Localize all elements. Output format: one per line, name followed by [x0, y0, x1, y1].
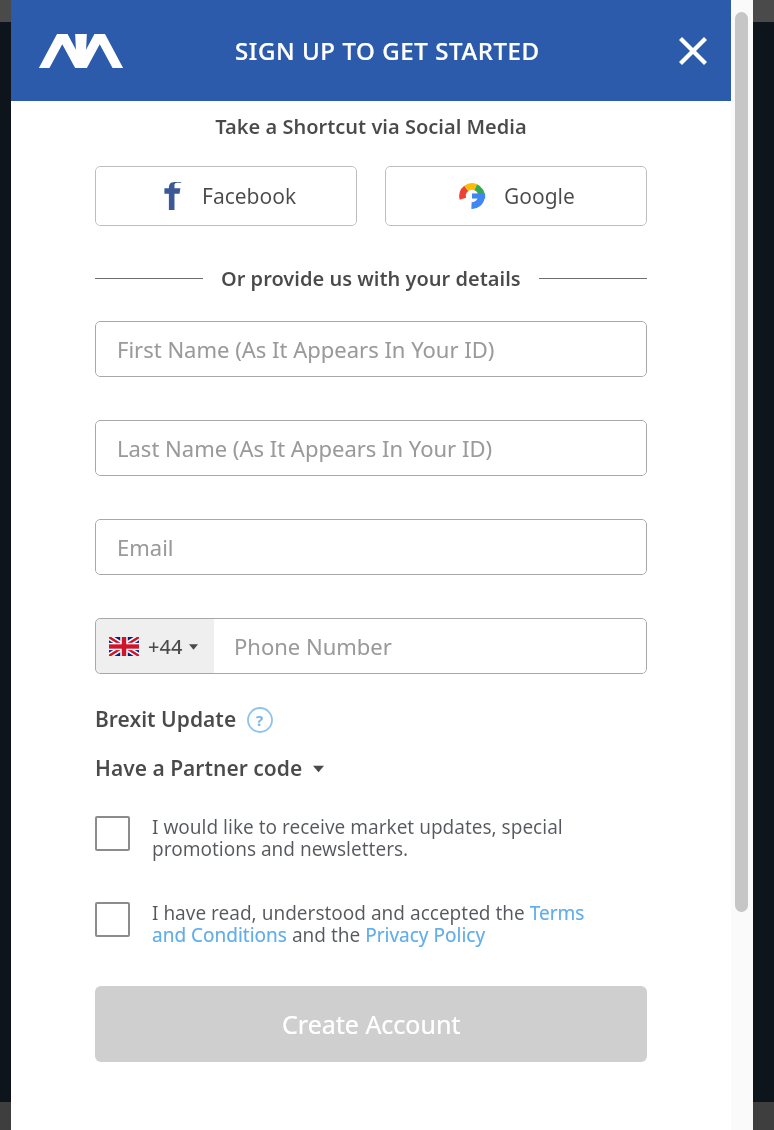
staticText: Or provide us with your details: [221, 265, 521, 292]
button[interactable]: I have read, understood and accepted the…: [95, 900, 647, 948]
button[interactable]: +44: [95, 618, 214, 674]
button[interactable]: Phone Number: [214, 618, 647, 674]
staticText: I have read, understood and accepted the…: [152, 900, 585, 948]
button[interactable]: I would like to receive market updates, …: [95, 814, 647, 862]
button[interactable]: Facebook: [95, 166, 357, 226]
button[interactable]: Last Name (As It Appears In Your ID): [95, 420, 647, 476]
staticText: Last Name (As It Appears In Your ID): [117, 433, 493, 463]
button[interactable]: First Name (As It Appears In Your ID): [95, 321, 647, 377]
button[interactable]: Have a Partner code: [95, 754, 324, 783]
staticText: Have a Partner code: [95, 754, 303, 783]
staticText: Create Account: [282, 1007, 461, 1041]
staticText: Facebook: [202, 182, 297, 211]
staticText: Take a Shortcut via Social Media: [95, 113, 647, 140]
staticText: I would like to receive market updates, …: [152, 814, 563, 862]
other: Brexit Update info: [247, 707, 273, 733]
staticText: Email: [117, 532, 174, 562]
staticText: ?: [256, 710, 264, 730]
staticText: Phone Number: [234, 631, 392, 661]
staticText: First Name (As It Appears In Your ID): [117, 334, 495, 364]
button[interactable]: Close: [671, 29, 715, 73]
button[interactable]: Brexit Update: [95, 705, 273, 734]
staticText: +44: [148, 633, 183, 660]
button[interactable]: Create Account: [95, 986, 647, 1062]
button[interactable]: Email: [95, 519, 647, 575]
staticText: Brexit Update: [95, 705, 237, 734]
staticText: SIGN UP TO GET STARTED: [235, 34, 540, 67]
button[interactable]: Google: [385, 166, 647, 226]
staticText: Google: [504, 182, 575, 211]
